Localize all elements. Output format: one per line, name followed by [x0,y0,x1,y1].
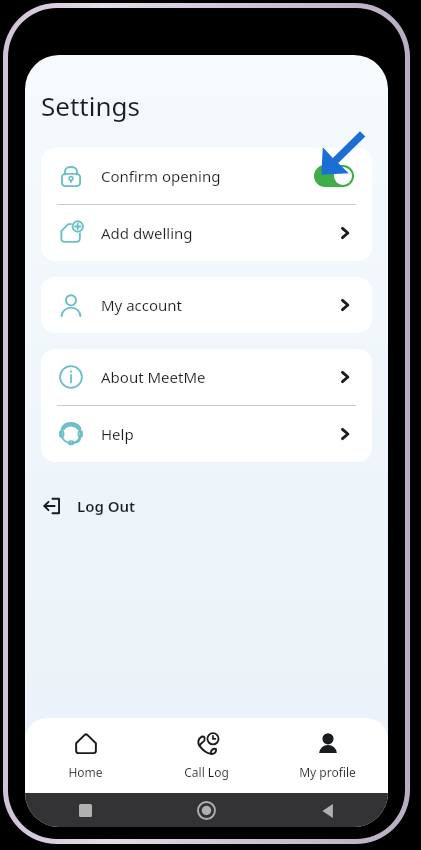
other: Open [336,425,354,443]
other: Open [336,224,354,242]
staticText: Settings [41,88,140,123]
button[interactable]: Help [41,406,372,462]
staticText: Log Out [77,496,136,516]
button[interactable]: Call Log [146,718,267,793]
button[interactable]: Confirm opening [41,148,372,204]
button[interactable]: Log Out [33,484,380,528]
staticText: Help [101,424,336,444]
staticText: Add dwelling [101,223,336,243]
button[interactable]: My profile [267,718,388,793]
button[interactable]: Confirm opening toggle, on [314,165,354,187]
staticText: My account [101,295,336,315]
staticText: Home [68,764,103,780]
other: Open [336,296,354,314]
staticText: Call Log [184,764,229,780]
button[interactable]: My account [41,277,372,333]
staticText: My profile [299,764,356,780]
button[interactable]: About MeetMe [41,349,372,405]
button[interactable]: Add dwelling [41,205,372,261]
button[interactable]: Home [25,718,146,793]
staticText: About MeetMe [101,367,336,387]
other: Open [336,368,354,386]
staticText: Confirm opening [101,166,314,186]
